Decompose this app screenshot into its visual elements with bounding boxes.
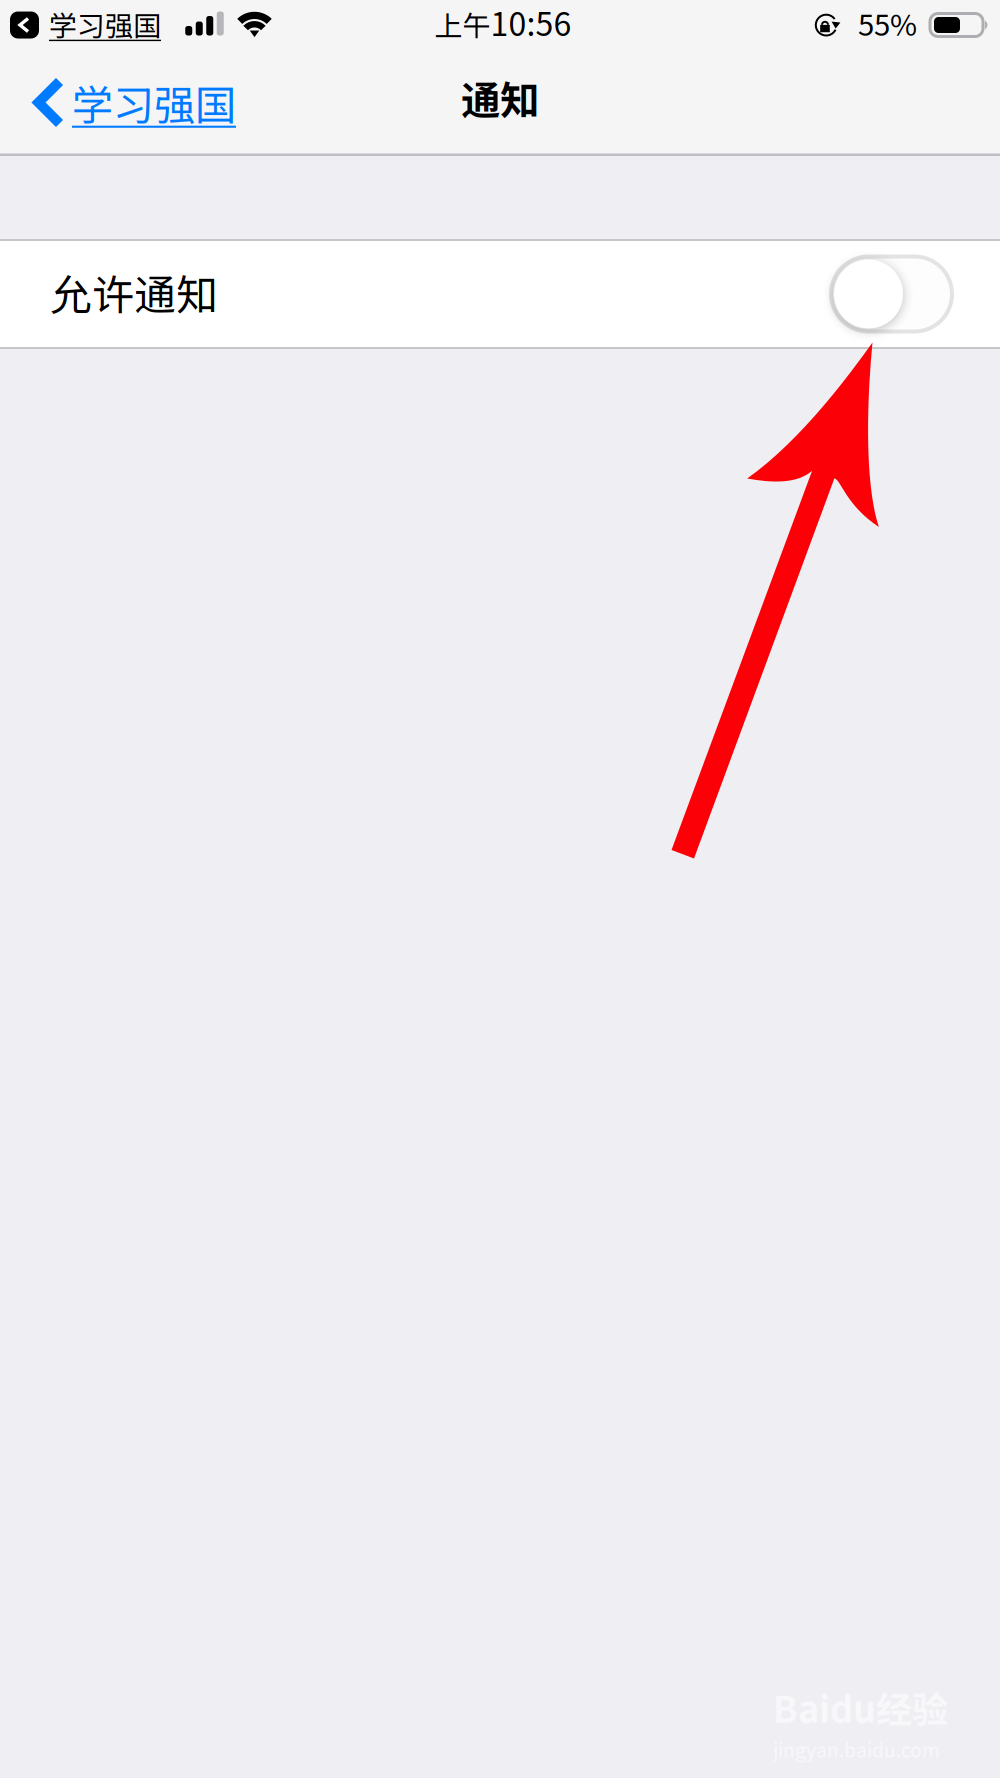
button[interactable]: 学习强国 bbox=[0, 56, 254, 155]
staticText: 通知 bbox=[461, 69, 539, 126]
staticText: 学习强国 bbox=[72, 73, 236, 132]
staticText: Baidu经验 bbox=[773, 1681, 948, 1733]
button[interactable]: 允许通知 bbox=[0, 239, 1000, 349]
staticText: 允许通知 bbox=[50, 262, 218, 322]
button[interactable]: Back to 学习强国 bbox=[0, 0, 161, 52]
staticText: 55% bbox=[858, 2, 917, 44]
staticText: 上午10:56 bbox=[434, 0, 571, 45]
staticText: 学习强国 bbox=[49, 4, 161, 44]
